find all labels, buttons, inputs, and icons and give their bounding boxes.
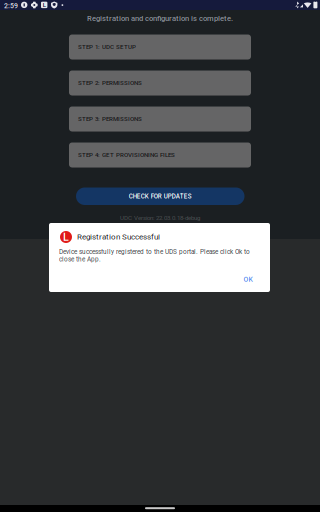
staticText: UDC Version: 22.03.0.18-debug: [120, 214, 200, 222]
staticText: L: [63, 231, 69, 243]
button[interactable]: STEP 3: PERMISSIONS: [69, 106, 251, 131]
button[interactable]: STEP 1: UDC SETUP: [69, 34, 251, 59]
staticText: L: [43, 1, 46, 8]
button[interactable]: STEP 4: GET PROVISIONING FILES: [69, 142, 251, 167]
staticText: OK: [243, 275, 252, 283]
staticText: STEP 1: UDC SETUP: [78, 43, 136, 51]
staticText: Registration Successful: [77, 232, 160, 241]
staticText: STEP 2: PERMISSIONS: [78, 79, 142, 87]
button[interactable]: STEP 2: PERMISSIONS: [69, 70, 251, 95]
staticText: Registration and configuration is comple…: [87, 14, 233, 23]
staticText: 2:59: [4, 2, 18, 10]
staticText: STEP 3: PERMISSIONS: [78, 115, 142, 123]
staticText: Device successfully registered to the UD…: [59, 248, 250, 263]
button[interactable]: OK: [236, 273, 260, 285]
staticText: STEP 4: GET PROVISIONING FILES: [78, 151, 175, 159]
button[interactable]: CHECK FOR UPDATES: [76, 187, 244, 205]
staticText: CHECK FOR UPDATES: [129, 193, 192, 200]
